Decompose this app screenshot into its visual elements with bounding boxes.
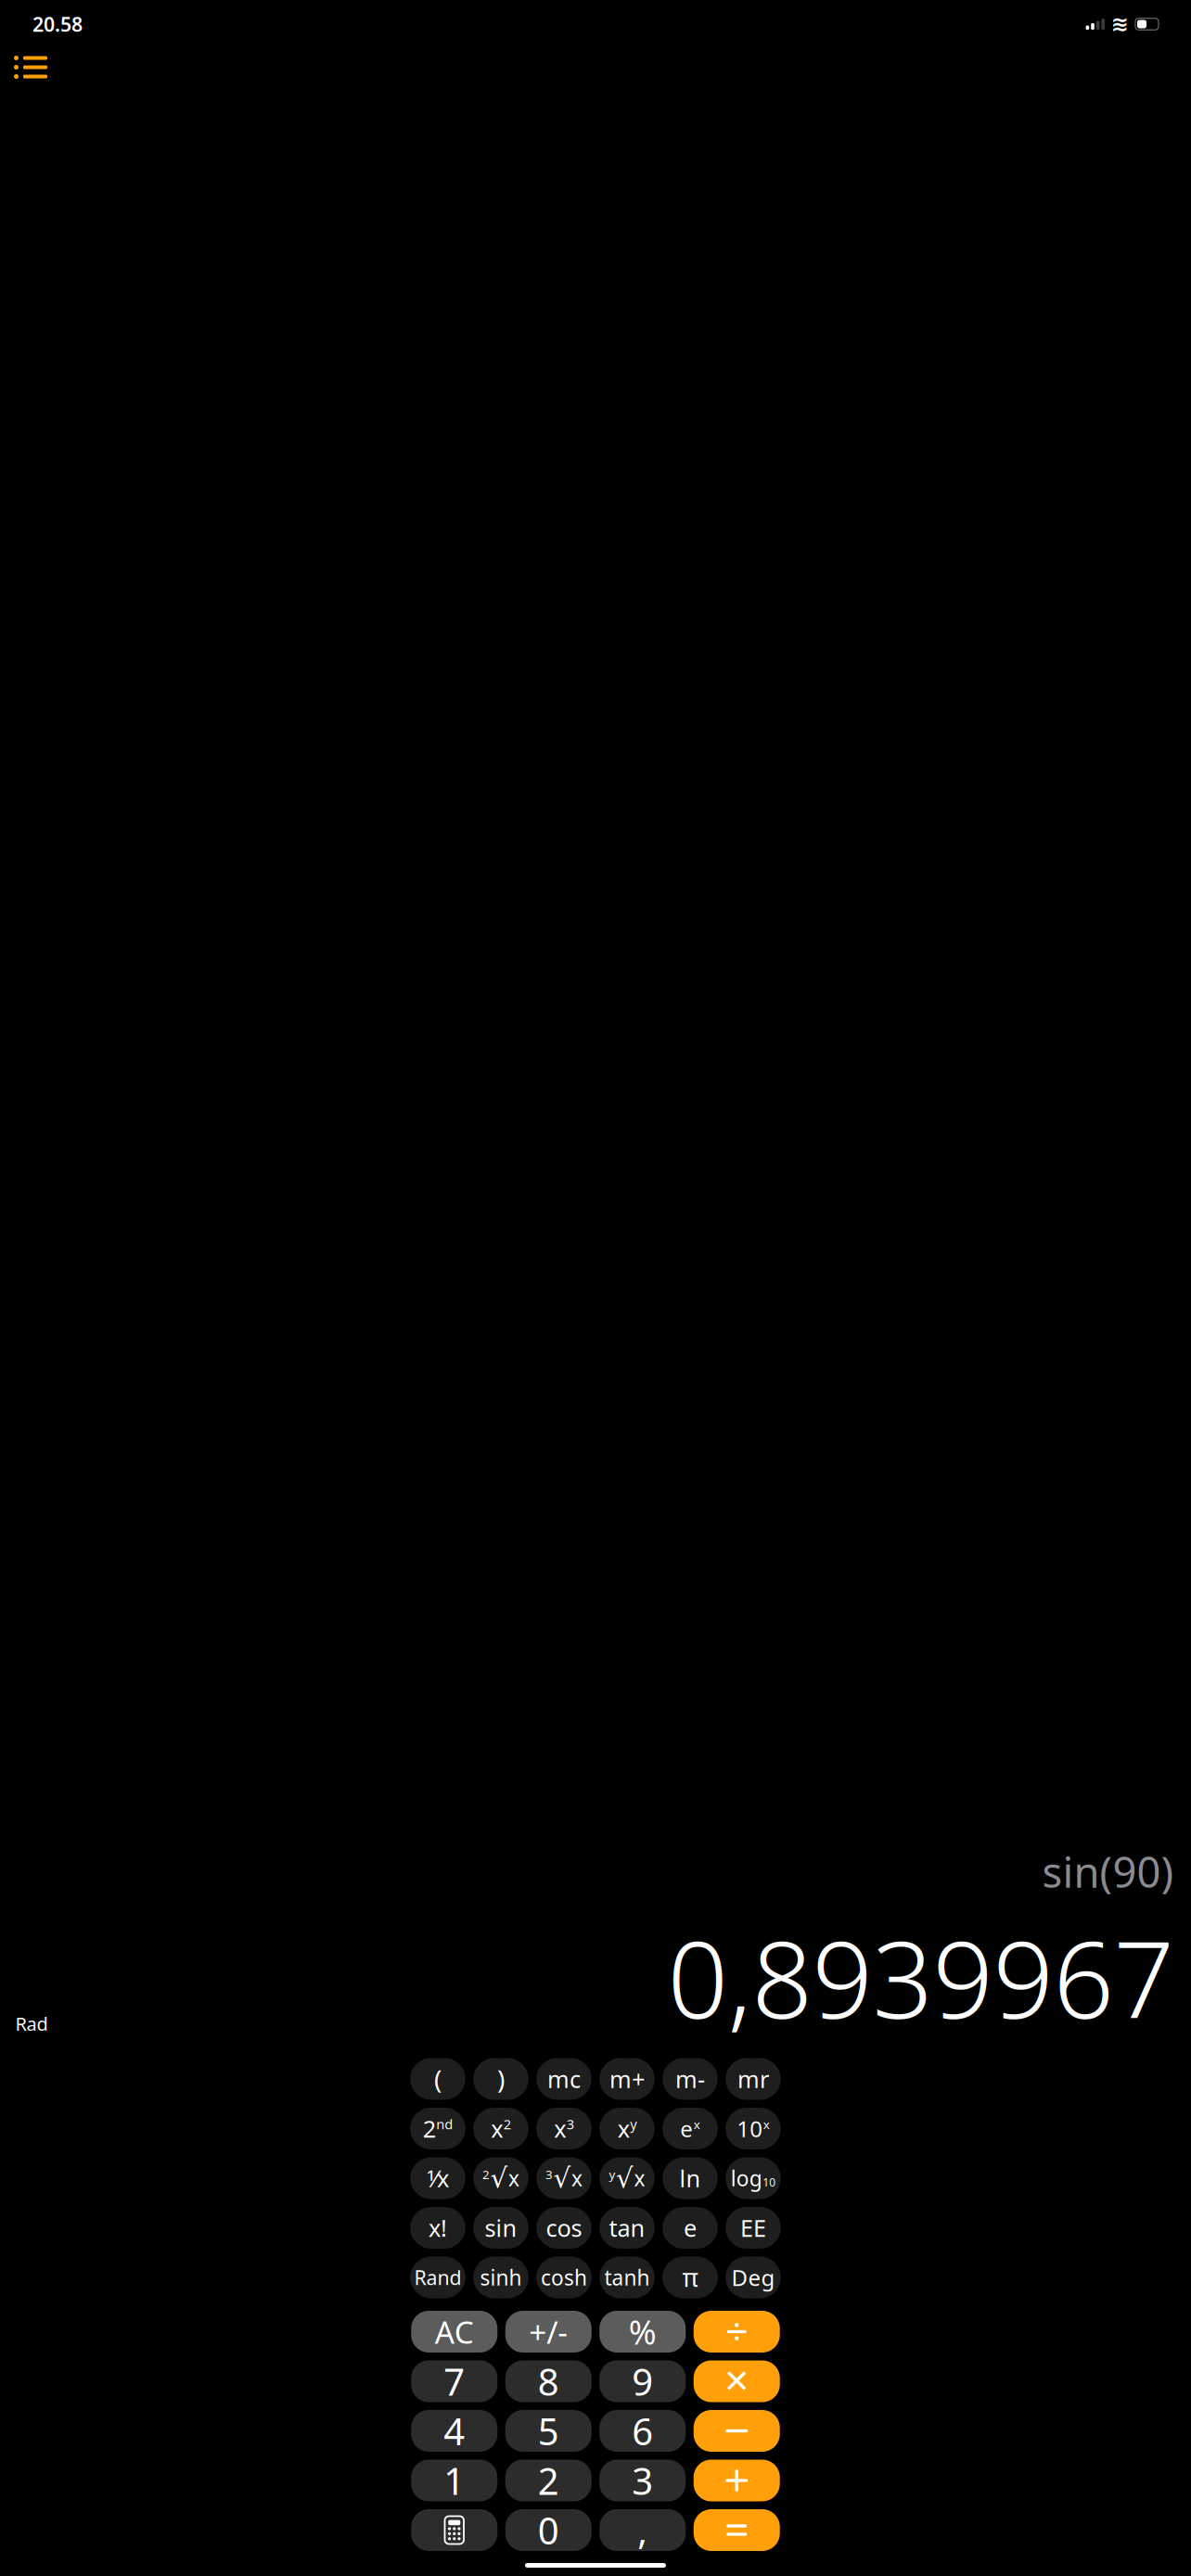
button[interactable]: 8 [505,2360,592,2402]
staticText: √ [490,2163,508,2194]
staticText: e [684,2212,697,2243]
button[interactable]: m+ [599,2058,655,2100]
button[interactable]: e [662,2207,718,2249]
staticText: 20.58 [32,11,83,37]
button[interactable]: x [599,2108,655,2149]
staticText: 7 [444,2357,465,2406]
button[interactable]: 7 [411,2360,497,2402]
staticText: 2 [423,2113,436,2144]
button[interactable]: m- [662,2058,718,2100]
button[interactable]: , [599,2509,686,2551]
button[interactable]: tan [599,2207,655,2249]
staticText: 6 [632,2406,653,2455]
staticText: 0 [538,2505,559,2555]
button[interactable]: 3 [536,2157,592,2199]
staticText: mr [737,2063,769,2095]
button[interactable]: Rand [410,2257,465,2298]
button[interactable]: sin [473,2207,528,2249]
button[interactable]: cos [536,2207,592,2249]
staticText: EE [740,2212,766,2243]
staticText: m- [675,2063,705,2095]
button[interactable]: 2 [410,2108,465,2149]
staticText: x [694,2116,700,2132]
button[interactable]: EE [726,2207,781,2249]
button[interactable]: Equals [694,2509,780,2551]
staticText: 9 [632,2357,653,2406]
staticText: ) [497,2062,505,2096]
button[interactable]: ⅟x [410,2157,465,2199]
button[interactable]: 3 [599,2460,686,2501]
button[interactable]: ( [410,2058,465,2100]
button[interactable]: Divide [694,2311,780,2353]
staticText: e [680,2114,693,2143]
staticText: Deg [731,2263,775,2292]
staticText: Rad [15,2011,48,2036]
button[interactable]: Standard calculator [411,2509,497,2551]
staticText: x! [429,2212,447,2243]
button[interactable]: x [473,2108,528,2149]
button[interactable]: 4 [411,2410,497,2452]
staticText: 3 [545,2166,553,2182]
staticText: x [571,2164,583,2192]
button[interactable]: log [726,2157,781,2199]
button[interactable]: % [599,2311,686,2353]
button[interactable]: Minus [694,2410,780,2452]
staticText: tanh [604,2263,650,2291]
button[interactable]: Multiply [694,2360,780,2402]
staticText: ( [434,2062,442,2096]
staticText: +/- [529,2311,568,2352]
staticText: AC [435,2311,474,2352]
staticText: √ [616,2163,634,2194]
staticText: sin(90) [1042,1843,1174,1899]
button[interactable]: y [599,2157,655,2199]
button[interactable]: 2 [505,2460,592,2501]
button[interactable]: 5 [505,2410,592,2452]
staticText: x [491,2113,503,2144]
staticText: log [731,2164,762,2192]
button[interactable]: +/- [505,2311,592,2353]
button[interactable]: 6 [599,2410,686,2452]
button[interactable]: History [5,46,57,88]
staticText: , [637,2505,648,2555]
button[interactable]: 10 [726,2108,781,2149]
staticText: 10 [763,2175,776,2190]
staticText: ≋ [1111,12,1129,36]
button[interactable]: cosh [536,2257,592,2298]
staticText: nd [436,2115,453,2133]
button[interactable]: ln [662,2157,718,2199]
staticText: cosh [541,2263,587,2291]
button[interactable]: tanh [599,2257,655,2298]
staticText: cos [546,2212,582,2243]
staticText: 4 [444,2406,465,2455]
staticText: ⅟x [427,2163,449,2194]
staticText: π [682,2261,698,2294]
button[interactable]: ) [473,2058,528,2100]
button[interactable]: AC [411,2311,497,2353]
staticText: 2 [503,2115,511,2133]
button[interactable]: 9 [599,2360,686,2402]
staticText: y [609,2166,615,2182]
staticText: √ [553,2163,571,2194]
button[interactable]: mr [726,2058,781,2100]
button[interactable]: sinh [473,2257,528,2298]
button[interactable]: x! [410,2207,465,2249]
button[interactable]: π [662,2257,718,2298]
button[interactable]: Plus [694,2460,780,2501]
staticText: x [618,2113,630,2144]
button[interactable]: e [662,2108,718,2149]
staticText: Rand [414,2264,461,2290]
staticText: y [630,2115,636,2133]
staticText: 2 [482,2166,490,2182]
staticText: 5 [538,2406,559,2455]
button[interactable]: 0 [505,2509,592,2551]
button[interactable]: x [536,2108,592,2149]
staticText: x [763,2116,770,2132]
button[interactable]: 2 [473,2157,528,2199]
staticText: 10 [737,2114,763,2143]
button[interactable]: 1 [411,2460,497,2501]
staticText: 3 [567,2115,574,2133]
staticText: 8 [538,2357,559,2406]
button[interactable]: mc [536,2058,592,2100]
button[interactable]: Deg [726,2257,781,2298]
staticText: tan [609,2212,645,2243]
